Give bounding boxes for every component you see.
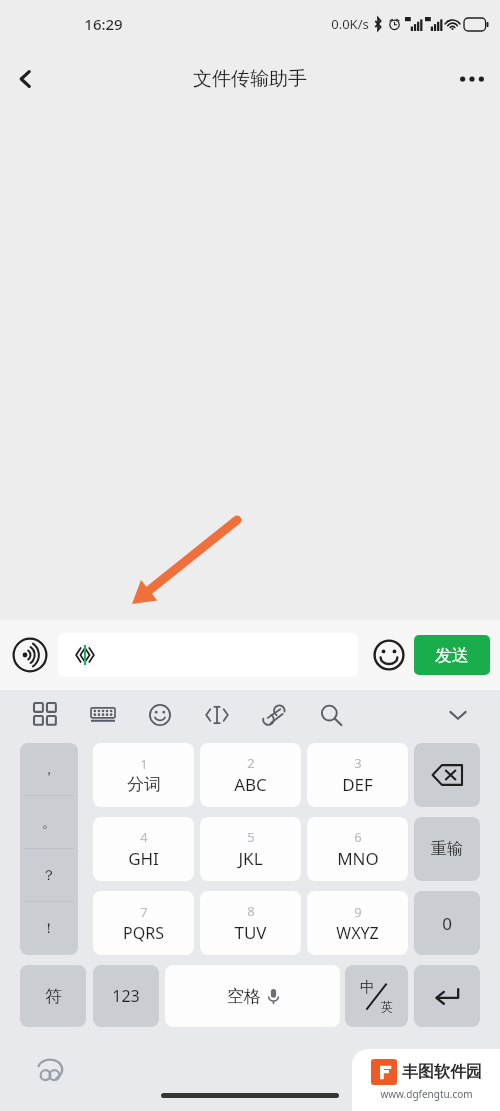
staticText: MNO bbox=[337, 847, 379, 870]
staticText: JKL bbox=[238, 847, 263, 870]
button[interactable]: 4 bbox=[93, 817, 194, 881]
button[interactable]: 1 bbox=[93, 743, 194, 807]
staticText: ABC bbox=[234, 773, 267, 796]
staticText: 符 bbox=[45, 986, 62, 1007]
button[interactable]: Emoji panel bbox=[142, 697, 178, 733]
staticText: 0.0K/s bbox=[331, 15, 369, 33]
button[interactable]: 6 bbox=[307, 817, 408, 881]
staticText: ！ bbox=[42, 920, 56, 938]
staticText: 8 bbox=[247, 902, 255, 920]
staticText: 2 bbox=[247, 754, 255, 772]
staticText: 。 bbox=[42, 814, 56, 832]
staticText: 123 bbox=[112, 985, 140, 1007]
staticText: www.dgfengtu.com bbox=[380, 1087, 473, 1101]
button[interactable]: 2 bbox=[200, 743, 301, 807]
staticText: 分词 bbox=[127, 774, 161, 795]
staticText: 9 bbox=[354, 903, 362, 921]
button[interactable]: Search bbox=[313, 697, 349, 733]
staticText: 重输 bbox=[431, 839, 463, 859]
staticText: 中 bbox=[360, 978, 375, 997]
staticText: 文件传输助手 bbox=[193, 67, 307, 91]
staticText: 1 bbox=[140, 755, 148, 773]
button[interactable]: ？ bbox=[20, 849, 78, 902]
button[interactable]: 3 bbox=[307, 743, 408, 807]
button[interactable]: Emoji bbox=[368, 634, 410, 676]
button[interactable]: ， bbox=[20, 743, 78, 796]
button[interactable]: Grid bbox=[28, 697, 64, 733]
button[interactable]: Enter bbox=[414, 965, 480, 1027]
button[interactable]: 0 bbox=[414, 891, 480, 955]
button[interactable]: 发送 bbox=[414, 635, 490, 675]
button[interactable]: 重输 bbox=[414, 817, 480, 881]
button[interactable]: 中 bbox=[345, 965, 408, 1027]
staticText: 3 bbox=[354, 754, 362, 772]
button[interactable]: Back bbox=[0, 53, 52, 105]
button[interactable]: More options bbox=[444, 51, 500, 107]
staticText: 英 bbox=[381, 999, 393, 1014]
staticText: DEF bbox=[342, 773, 373, 796]
staticText: 6 bbox=[354, 828, 362, 846]
button[interactable]: Keyboard layout bbox=[85, 697, 121, 733]
button[interactable]: 9 bbox=[307, 891, 408, 955]
staticText: TUV bbox=[234, 921, 267, 944]
staticText: 丰图软件园 bbox=[402, 1062, 482, 1082]
button[interactable] bbox=[58, 633, 358, 677]
button[interactable]: 123 bbox=[93, 965, 159, 1027]
button[interactable]: Cursor move bbox=[199, 697, 235, 733]
staticText: 4 bbox=[140, 828, 148, 846]
staticText: ？ bbox=[42, 867, 56, 885]
button[interactable]: 空格 bbox=[165, 965, 340, 1027]
staticText: 空格 bbox=[227, 986, 261, 1007]
button[interactable]: ！ bbox=[20, 902, 78, 955]
staticText: 发送 bbox=[435, 645, 469, 666]
staticText: ， bbox=[42, 761, 56, 779]
staticText: WXYZ bbox=[336, 922, 379, 944]
staticText: GHI bbox=[128, 847, 159, 870]
button[interactable]: 符 bbox=[20, 965, 86, 1027]
button[interactable]: 7 bbox=[93, 891, 194, 955]
button[interactable]: 5 bbox=[200, 817, 301, 881]
button[interactable]: Delete bbox=[414, 743, 480, 807]
button[interactable]: Clipboard bbox=[256, 697, 292, 733]
staticText: 0 bbox=[442, 912, 452, 935]
button[interactable]: 。 bbox=[20, 796, 78, 849]
staticText: 7 bbox=[140, 903, 148, 921]
staticText: PQRS bbox=[123, 922, 164, 944]
button[interactable]: Voice input bbox=[10, 635, 50, 675]
staticText: 5 bbox=[247, 828, 255, 846]
button[interactable]: Input method logo bbox=[30, 1051, 70, 1091]
button[interactable]: 8 bbox=[200, 891, 301, 955]
staticText: 16:29 bbox=[84, 14, 123, 34]
button[interactable]: Hide keyboard bbox=[440, 697, 476, 733]
